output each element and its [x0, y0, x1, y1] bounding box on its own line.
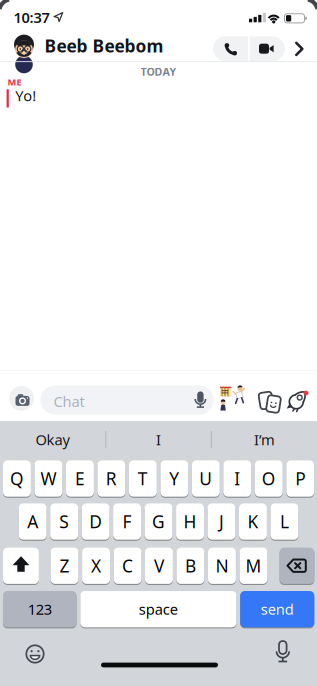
button[interactable]: S	[50, 503, 78, 540]
staticText: Beeb Beebom	[44, 34, 163, 57]
staticText: V	[154, 554, 164, 577]
button[interactable]: A	[19, 503, 47, 540]
button[interactable]: C	[114, 548, 141, 584]
staticText: S	[59, 510, 69, 533]
button[interactable]	[259, 44, 274, 54]
button[interactable]: R	[97, 460, 125, 497]
staticText: Okay	[35, 430, 69, 449]
staticText: I	[156, 430, 161, 449]
staticText: Q	[10, 467, 24, 490]
button[interactable]: Okay	[0, 421, 105, 457]
button[interactable]: P	[286, 460, 314, 497]
button[interactable]: I	[106, 421, 211, 457]
button[interactable]	[25, 644, 44, 663]
staticText: R	[106, 467, 117, 490]
button[interactable]: I’m	[212, 421, 317, 457]
staticText: E	[75, 467, 85, 490]
button[interactable]	[251, 384, 277, 411]
button[interactable]: T	[129, 460, 157, 497]
button[interactable]: Z	[51, 548, 78, 584]
staticText: TODAY	[140, 65, 176, 79]
staticText: F	[122, 510, 131, 533]
staticText: G	[152, 510, 165, 533]
button[interactable]: X	[82, 548, 110, 584]
staticText: U	[199, 467, 212, 490]
staticText: Z	[59, 554, 69, 577]
button[interactable]: 123	[3, 591, 76, 627]
button[interactable]: E	[66, 460, 94, 497]
staticText: X	[91, 554, 101, 577]
staticText: H	[183, 510, 196, 533]
button[interactable]: Chat	[40, 385, 214, 415]
staticText: Yo!	[15, 86, 36, 105]
button[interactable]: Y	[160, 460, 188, 497]
button[interactable]: K	[239, 503, 267, 540]
button[interactable]: V	[145, 548, 173, 584]
staticText: send	[261, 599, 294, 619]
staticText: B	[185, 554, 196, 577]
button[interactable]	[224, 42, 238, 56]
staticText: space	[139, 599, 178, 619]
button[interactable]	[280, 548, 314, 584]
staticText: J	[219, 510, 224, 533]
staticText: 10:37	[13, 7, 49, 27]
button[interactable]	[3, 548, 39, 584]
staticText: I	[234, 467, 240, 490]
staticText: P	[295, 467, 305, 490]
button[interactable]: D	[82, 503, 110, 540]
staticText: A	[27, 510, 38, 533]
button[interactable]: N	[208, 548, 236, 584]
button[interactable]: send	[240, 591, 314, 627]
staticText: ME	[7, 76, 21, 88]
staticText: Chat	[53, 392, 84, 411]
button[interactable]: space	[80, 591, 236, 627]
button[interactable]: J	[207, 503, 235, 540]
button[interactable]: M	[239, 548, 267, 584]
staticText: W	[40, 467, 56, 490]
staticText: D	[89, 510, 102, 533]
staticText: N	[215, 554, 228, 577]
button[interactable]: U	[192, 460, 220, 497]
staticText: M	[245, 554, 261, 577]
button[interactable]: W	[34, 460, 62, 497]
button[interactable]	[216, 383, 246, 413]
button[interactable]	[9, 386, 34, 411]
staticText: Y	[169, 467, 179, 490]
button[interactable]: B	[176, 548, 204, 584]
staticText: O	[262, 467, 276, 490]
staticText: L	[280, 510, 289, 533]
staticText: C	[122, 554, 133, 577]
button[interactable]	[10, 34, 38, 62]
staticText: K	[247, 510, 258, 533]
button[interactable]: F	[113, 503, 141, 540]
button[interactable]: L	[270, 503, 298, 540]
staticText: I’m	[254, 430, 275, 449]
button[interactable]	[276, 641, 290, 663]
button[interactable]: I	[223, 460, 251, 497]
staticText: T	[138, 467, 148, 490]
button[interactable]: G	[145, 503, 172, 540]
button[interactable]: H	[176, 503, 204, 540]
staticText: 123	[28, 599, 52, 619]
button[interactable]	[284, 386, 310, 413]
button[interactable]: O	[255, 460, 283, 497]
button[interactable]: Q	[3, 460, 31, 497]
button[interactable]	[295, 42, 304, 56]
